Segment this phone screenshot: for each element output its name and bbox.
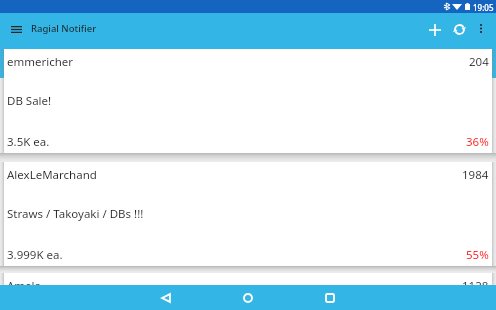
staticText: 36% xyxy=(466,134,489,150)
button[interactable]: Refresh xyxy=(445,15,474,44)
staticText: 204 xyxy=(469,54,489,70)
staticText: 55% xyxy=(466,247,489,263)
button[interactable]: Home xyxy=(223,285,273,310)
staticText: 3.999K ea. xyxy=(7,247,63,263)
staticText: Ragial Notifier xyxy=(31,22,97,35)
staticText: 1128 xyxy=(462,278,489,294)
staticText: DB Sale! xyxy=(7,93,52,109)
staticText: 3.5K ea. xyxy=(7,134,50,150)
button[interactable]: Add xyxy=(420,15,449,44)
staticText: 1984 xyxy=(462,167,489,183)
staticText: emmericher xyxy=(7,54,74,70)
button[interactable]: Recent apps xyxy=(305,285,355,310)
button[interactable]: Open navigation drawer xyxy=(4,17,28,41)
button[interactable]: More options xyxy=(471,14,491,43)
staticText: AlexLeMarchand xyxy=(7,167,97,183)
button[interactable]: AlexLeMarchand xyxy=(0,162,496,266)
button[interactable]: Back xyxy=(141,285,191,310)
staticText: 19:05 xyxy=(473,2,494,13)
staticText: Amela xyxy=(7,278,42,294)
button[interactable]: Amela xyxy=(0,273,496,310)
button[interactable]: emmericher xyxy=(0,49,496,153)
staticText: Straws / Takoyaki / DBs !!! xyxy=(7,206,144,222)
